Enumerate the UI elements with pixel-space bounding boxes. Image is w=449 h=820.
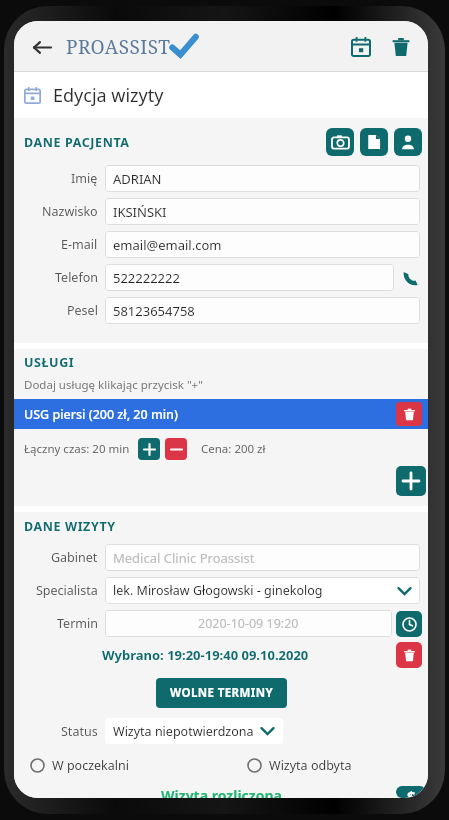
button[interactable]: W poczekalni bbox=[28, 755, 131, 776]
staticText: Wybrano: 19:20-19:40 09.10.2020 bbox=[102, 646, 309, 664]
staticText: DANE WIZYTY bbox=[24, 518, 116, 535]
staticText: USG piersi (200 zł, 20 min) bbox=[24, 406, 178, 423]
staticText: E-mail bbox=[61, 236, 98, 253]
button[interactable]: ADRIAN bbox=[105, 165, 420, 192]
button[interactable]: Decrease bbox=[165, 438, 187, 460]
button[interactable]: Clear term bbox=[396, 642, 422, 668]
staticText: lek. Mirosław Głogowski - ginekolog bbox=[113, 582, 323, 599]
button[interactable]: 2020-10-09 19:20 bbox=[105, 610, 392, 637]
staticText: Imię bbox=[71, 170, 98, 187]
staticText: IKSIŃSKI bbox=[113, 203, 167, 221]
button[interactable]: 522222222 bbox=[105, 264, 394, 291]
staticText: WOLNE TERMINY bbox=[170, 685, 273, 701]
button[interactable]: Patient bbox=[394, 128, 422, 156]
button[interactable]: email@email.com bbox=[105, 231, 420, 258]
button[interactable]: Call bbox=[398, 266, 422, 290]
staticText: Pesel bbox=[67, 302, 98, 319]
staticText: 522222222 bbox=[113, 269, 180, 287]
staticText: Telefon bbox=[55, 269, 98, 286]
staticText: $ bbox=[407, 786, 416, 798]
staticText: DANE PACJENTA bbox=[24, 134, 130, 151]
button[interactable]: IKSIŃSKI bbox=[105, 198, 420, 225]
button[interactable]: lek. Mirosław Głogowski - ginekolog bbox=[105, 577, 420, 604]
staticText: Wizyta niepotwierdzona bbox=[113, 723, 254, 740]
button[interactable]: Remove service bbox=[396, 402, 422, 426]
button[interactable]: Medical Clinic Proassist bbox=[105, 544, 420, 571]
staticText: Nazwisko bbox=[42, 203, 98, 220]
button[interactable]: Back bbox=[24, 30, 58, 64]
staticText: Medical Clinic Proassist bbox=[113, 549, 255, 567]
button[interactable]: Payment bbox=[396, 786, 426, 798]
staticText: USŁUGI bbox=[24, 354, 75, 371]
button[interactable]: Document bbox=[360, 128, 388, 156]
staticText: Status bbox=[61, 723, 98, 740]
button[interactable]: Wizyta niepotwierdzona bbox=[105, 718, 283, 744]
staticText: PROASSIST bbox=[66, 34, 171, 60]
staticText: Gabinet bbox=[51, 549, 98, 566]
staticText: Wizyta odbyta bbox=[269, 757, 352, 774]
button[interactable]: Calendar bbox=[344, 30, 378, 64]
staticText: email@email.com bbox=[113, 236, 222, 254]
button[interactable]: WOLNE TERMINY bbox=[156, 678, 287, 708]
staticText: ADRIAN bbox=[113, 170, 162, 188]
staticText: Łączny czas: 20 min bbox=[24, 441, 130, 457]
button[interactable]: Delete bbox=[384, 30, 418, 64]
button[interactable]: 58123654758 bbox=[105, 297, 420, 324]
button[interactable]: Pick time bbox=[396, 611, 422, 637]
button[interactable]: USG piersi (200 zł, 20 min) bbox=[14, 399, 428, 429]
staticText: 2020-10-09 19:20 bbox=[198, 615, 299, 632]
staticText: Wizyta rozliczona bbox=[161, 786, 282, 798]
staticText: Edycja wizyty bbox=[53, 83, 164, 108]
staticText: Dodaj usługę klikając przycisk "+" bbox=[24, 377, 203, 393]
staticText: W poczekalni bbox=[52, 757, 129, 774]
staticText: Cena: 200 zł bbox=[201, 441, 266, 457]
staticText: Termin bbox=[57, 615, 98, 632]
button[interactable]: Wizyta odbyta bbox=[245, 755, 354, 776]
staticText: 58123654758 bbox=[113, 302, 195, 320]
button[interactable]: Increase bbox=[138, 438, 160, 460]
staticText: Specialista bbox=[36, 582, 98, 599]
button[interactable]: Add service bbox=[396, 466, 426, 496]
button[interactable]: Camera bbox=[326, 128, 354, 156]
